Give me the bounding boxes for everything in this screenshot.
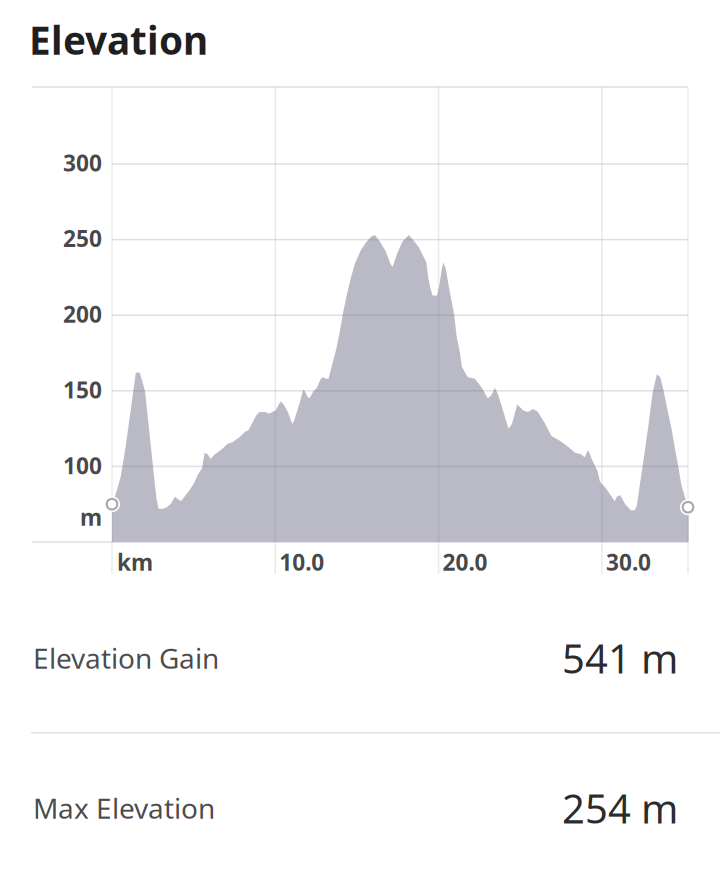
staticText: Elevation (29, 14, 208, 65)
staticText: 200 (63, 299, 102, 329)
staticText: 300 (63, 148, 102, 178)
staticText: 30.0 (606, 547, 651, 577)
staticText: Elevation Gain (33, 639, 219, 677)
staticText: 20.0 (443, 547, 488, 577)
button[interactable]: Max Elevation (0, 758, 720, 858)
staticText: 250 (63, 223, 102, 253)
staticText: 100 (63, 450, 102, 480)
staticText: 254 m (562, 781, 678, 834)
button[interactable]: Elevation Gain (0, 608, 720, 708)
staticText: Max Elevation (33, 789, 215, 827)
staticText: 541 m (562, 631, 678, 684)
staticText: m (80, 502, 102, 532)
staticText: 10.0 (279, 547, 324, 577)
staticText: 150 (63, 375, 102, 405)
staticText: km (117, 547, 153, 577)
